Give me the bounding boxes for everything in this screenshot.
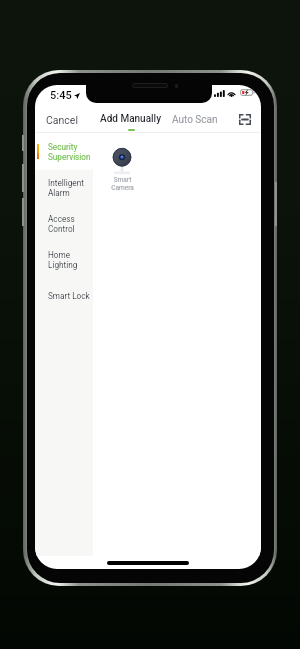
staticText: Home (48, 250, 71, 260)
staticText: Security (48, 142, 78, 152)
button[interactable]: Cancel (43, 111, 81, 129)
staticText: Add Manually (100, 113, 162, 125)
button[interactable]: Intelligent (35, 170, 93, 206)
button[interactable]: Add Manually (97, 111, 165, 133)
staticText: 5:45 (50, 89, 72, 102)
button[interactable]: Smart Camera (109, 144, 135, 192)
button[interactable]: Access (35, 206, 93, 242)
button[interactable]: Home (35, 242, 93, 278)
staticText: Auto Scan (172, 114, 218, 126)
button[interactable]: Scan device QR code (236, 110, 254, 128)
button[interactable]: Auto Scan (169, 111, 221, 129)
staticText: Control (48, 224, 75, 234)
staticText: Alarm (48, 188, 70, 198)
staticText: Supervision (48, 152, 91, 162)
staticText: Lighting (48, 260, 78, 270)
button[interactable]: Smart Lock (35, 278, 93, 314)
button[interactable]: Security (35, 133, 93, 170)
staticText: Smart Lock (48, 291, 90, 301)
staticText: Smart Camera (111, 176, 134, 192)
staticText: Intelligent (48, 178, 84, 188)
staticText: Cancel (46, 114, 78, 126)
staticText: Access (48, 214, 75, 224)
